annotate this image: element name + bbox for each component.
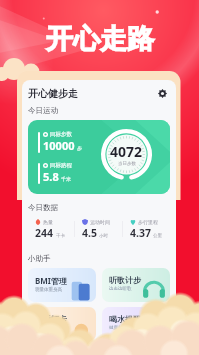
button[interactable]: 喝水提醒 — [102, 307, 170, 341]
staticText: 千米 — [61, 176, 71, 182]
button[interactable]: 运动时间 — [75, 216, 122, 242]
staticText: 10000 — [43, 138, 75, 153]
staticText: 今日运动 — [28, 106, 58, 115]
staticText: 4.37 — [130, 226, 151, 240]
staticText: 5.8 — [43, 169, 59, 184]
staticText: BMI管理 — [35, 275, 67, 286]
staticText: 健康补水 — [109, 325, 127, 331]
staticText: 4072 — [110, 142, 143, 161]
staticText: 喝水提醒 — [109, 314, 141, 324]
button[interactable]: BMI管理 — [28, 268, 96, 302]
staticText: 听歌计步 — [109, 275, 141, 285]
staticText: 步 — [77, 145, 82, 151]
staticText: 开心健步走 — [28, 87, 78, 100]
button[interactable]: 听歌计步 — [102, 268, 170, 302]
staticText: 测量体重身高 — [35, 287, 62, 293]
staticText: 当日步数 — [118, 161, 136, 167]
staticText: 小助手 — [28, 254, 51, 263]
button[interactable]: 热量 — [28, 216, 74, 242]
staticText: 运动时间 — [90, 219, 110, 225]
button[interactable]: 早睡打卡 — [28, 307, 96, 341]
staticText: 热量 — [43, 219, 53, 225]
button[interactable]: 目标步数 — [28, 120, 170, 194]
staticText: 千卡 — [56, 233, 65, 239]
staticText: 小时 — [99, 233, 108, 239]
staticText: 步行里程 — [138, 219, 158, 225]
staticText: 边走边听歌 — [109, 286, 132, 292]
staticText: 公里 — [153, 233, 162, 239]
staticText: 244 — [35, 226, 54, 240]
staticText: 开心走路 — [46, 22, 154, 56]
staticText: 4.5 — [82, 226, 97, 240]
staticText: 早睡打卡 — [35, 314, 67, 324]
button[interactable]: 步行里程 — [123, 216, 170, 242]
staticText: 今日数据 — [28, 203, 58, 212]
staticText: 目标路程 — [50, 162, 72, 169]
button[interactable]: Settings — [154, 85, 170, 101]
staticText: 目标步数 — [50, 131, 72, 138]
